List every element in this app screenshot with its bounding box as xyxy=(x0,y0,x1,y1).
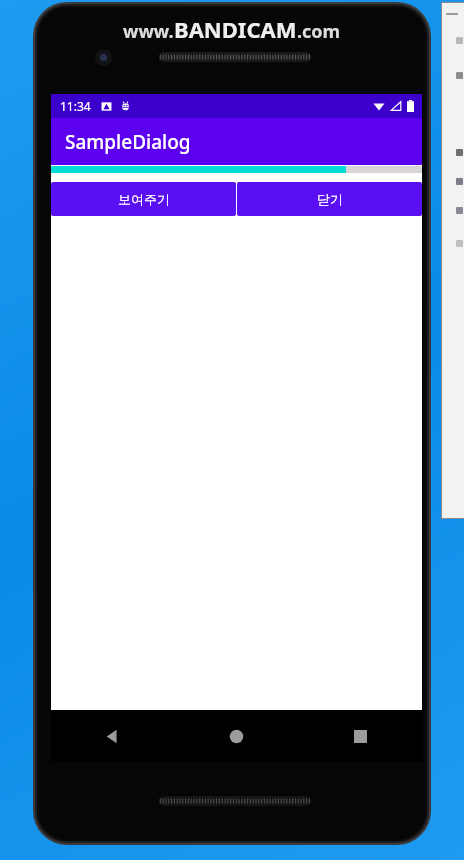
button[interactable]: SampleDialog xyxy=(51,118,422,165)
staticText: BANDICAM xyxy=(174,14,297,44)
button[interactable]: Home xyxy=(174,710,298,762)
button[interactable]: Back xyxy=(51,710,174,762)
button[interactable]: Recent apps xyxy=(298,710,422,762)
button[interactable]: 닫기 xyxy=(237,182,422,216)
button[interactable]: 보여주기 xyxy=(51,182,236,216)
staticText: SampleDialog xyxy=(65,129,191,155)
staticText: 11:34 xyxy=(60,98,91,114)
staticText: .com xyxy=(297,19,341,44)
staticText: www. xyxy=(123,19,174,44)
staticText: 보여주기 xyxy=(118,191,170,207)
staticText: 닫기 xyxy=(317,191,343,207)
